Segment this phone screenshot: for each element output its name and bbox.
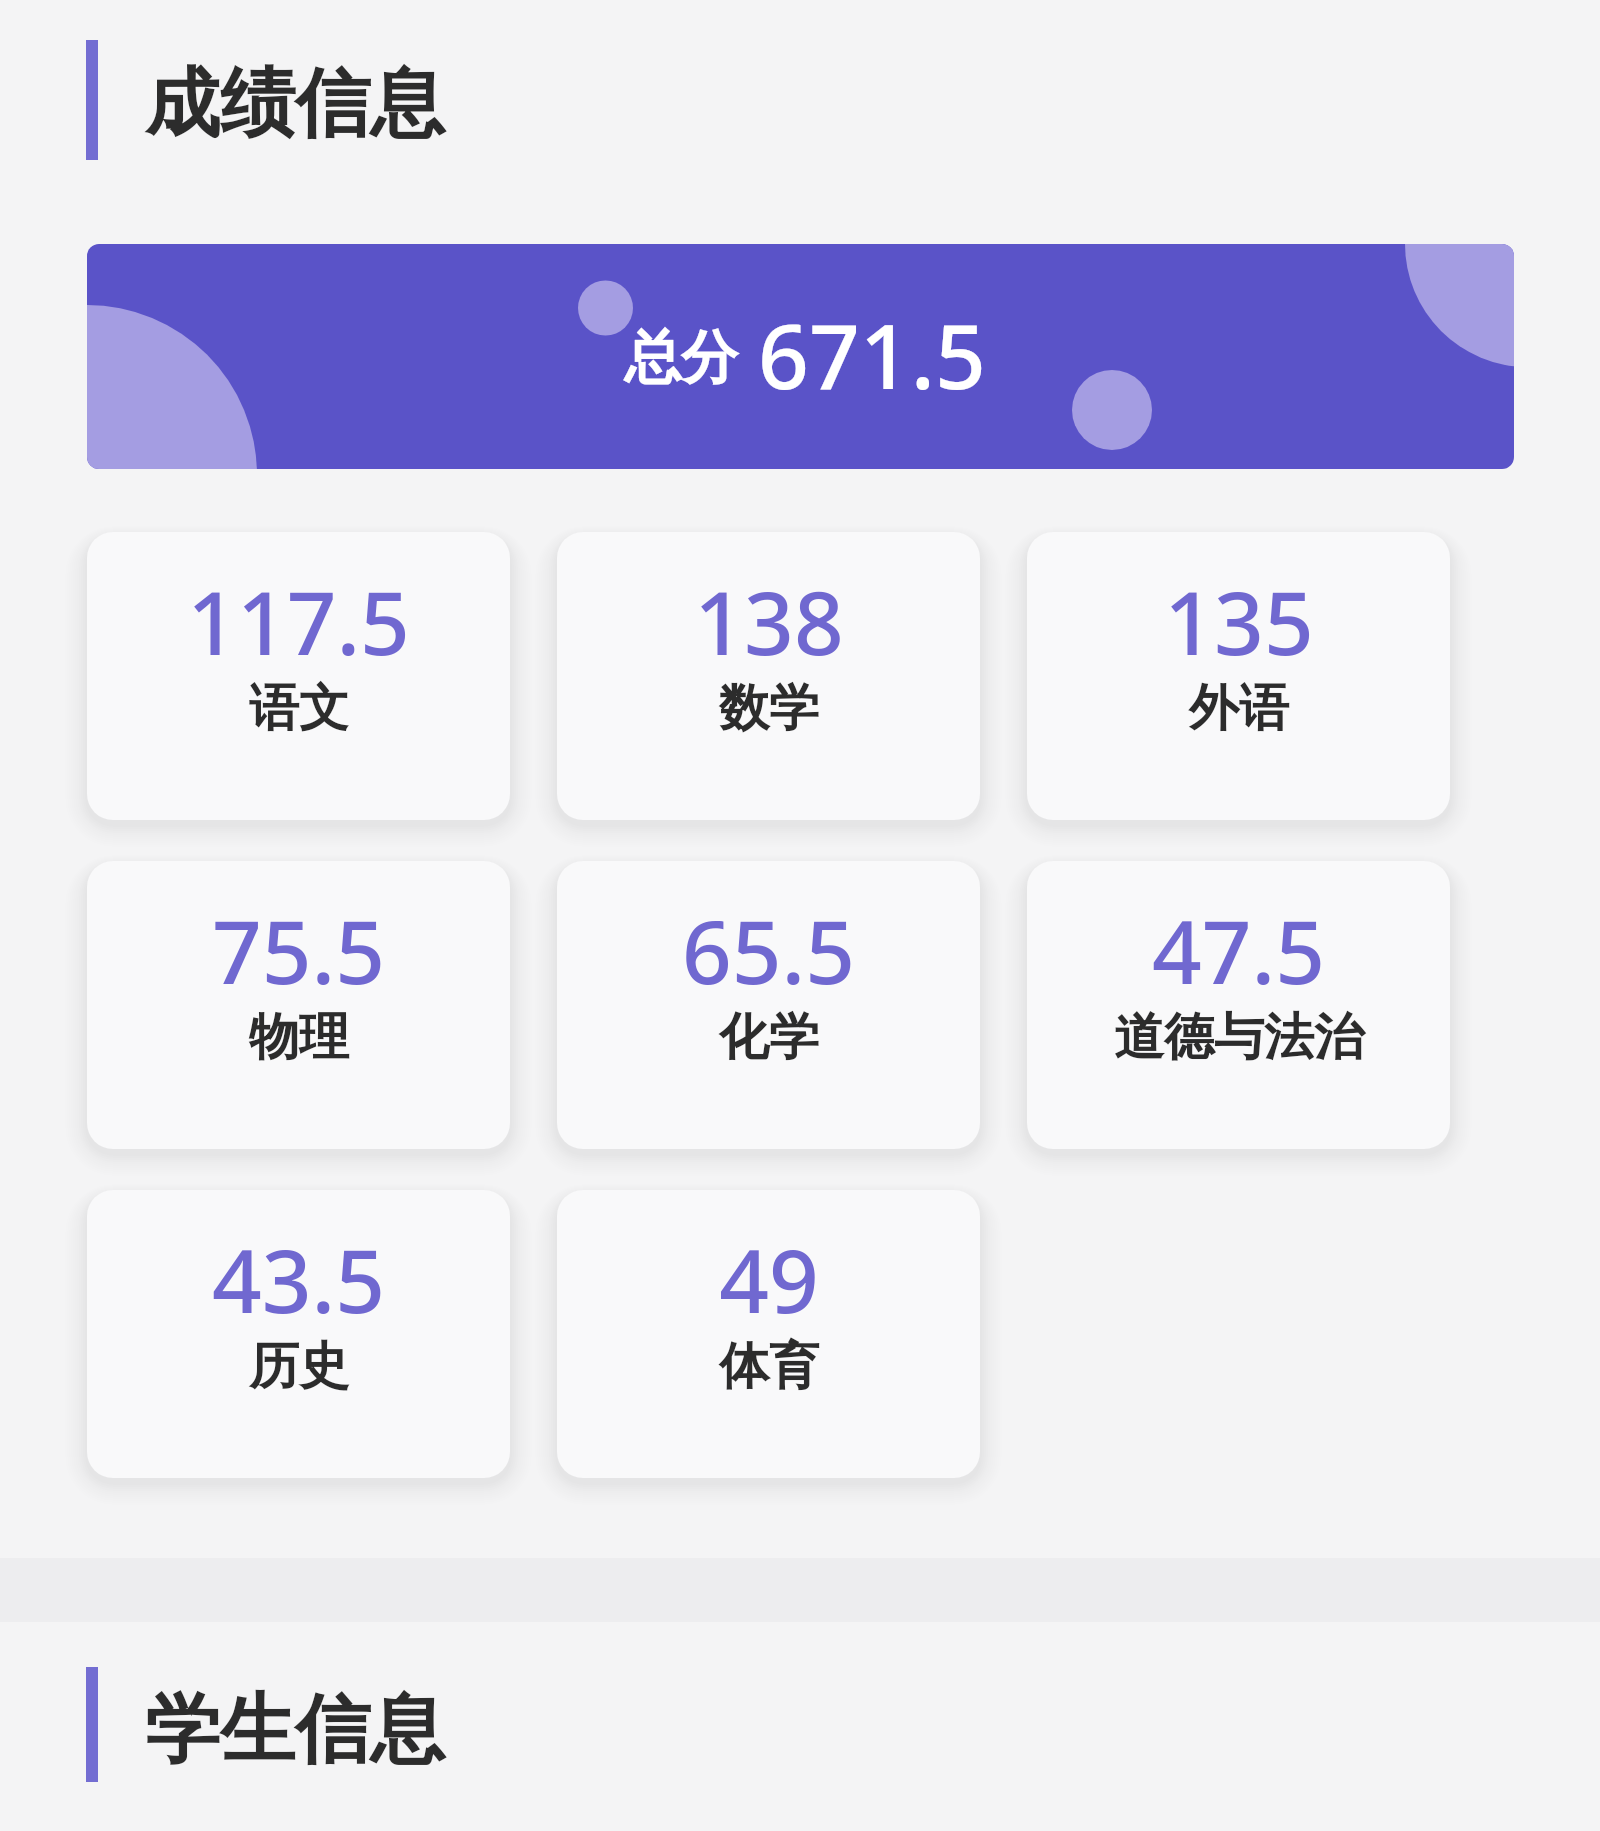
staticText: 物理 [249,1006,349,1069]
staticText: 数学 [719,677,819,740]
staticText: 49 [719,1220,819,1338]
button[interactable]: 75.5 [87,861,510,1149]
staticText: 135 [1164,562,1314,680]
staticText: 化学 [719,1006,819,1069]
button[interactable]: 135 [1027,532,1450,820]
button[interactable]: 47.5 [1027,861,1450,1149]
staticText: 语文 [249,677,349,740]
staticText: 75.5 [212,891,385,1009]
button[interactable]: 43.5 [87,1190,510,1478]
button[interactable]: 49 [557,1190,980,1478]
button[interactable]: 成绩信息 [86,40,445,160]
button[interactable]: 总分 [87,244,1514,469]
staticText: 47.5 [1152,891,1325,1009]
button[interactable]: 学生信息 [86,1667,445,1782]
button[interactable]: 117.5 [87,532,510,820]
staticText: 65.5 [682,891,855,1009]
staticText: 外语 [1189,677,1289,740]
staticText: 138 [694,562,844,680]
staticText: 117.5 [187,562,410,680]
button[interactable]: 65.5 [557,861,980,1149]
staticText: 历史 [249,1335,349,1398]
staticText: 成绩信息 [145,57,445,151]
staticText: 学生信息 [145,1683,445,1777]
button[interactable]: 138 [557,532,980,820]
staticText: 671.5 [758,294,986,415]
staticText: 总分 [624,322,738,394]
staticText: 体育 [719,1335,819,1398]
staticText: 道德与法治 [1114,1006,1364,1069]
staticText: 43.5 [212,1220,385,1338]
